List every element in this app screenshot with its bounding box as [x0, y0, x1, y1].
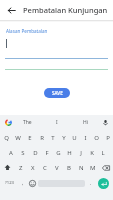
button[interactable]: C — [39, 160, 51, 175]
staticText: R — [40, 134, 44, 142]
button[interactable]: ?123 — [2, 175, 18, 191]
staticText: Alasan Pembatalan — [6, 28, 48, 34]
button[interactable]: . — [86, 175, 95, 191]
button[interactable]: Enter — [98, 178, 109, 189]
button[interactable]: S — [17, 145, 29, 160]
button[interactable]: R — [36, 130, 47, 145]
button[interactable]: Shift — [0, 160, 15, 175]
staticText: SAVE — [52, 90, 63, 96]
button[interactable]: U — [69, 130, 80, 145]
staticText: O — [94, 134, 99, 142]
staticText: C — [43, 164, 47, 172]
button[interactable]: A — [5, 145, 17, 160]
staticText: P — [106, 134, 110, 142]
staticText: M — [90, 164, 96, 172]
button[interactable]: I — [80, 130, 91, 145]
staticText: Q — [4, 134, 9, 142]
staticText: W — [15, 134, 21, 142]
button[interactable]: K — [86, 145, 97, 160]
button[interactable]: Q — [0, 130, 12, 145]
staticText: L — [101, 149, 105, 157]
button[interactable]: Voice input — [100, 117, 110, 127]
button[interactable]: I — [42, 115, 71, 129]
button[interactable]: G — [53, 145, 64, 160]
staticText: D — [33, 149, 38, 157]
staticText: U — [72, 134, 77, 142]
button[interactable]: H — [64, 145, 75, 160]
button[interactable]: , — [18, 175, 27, 191]
button[interactable]: F — [41, 145, 53, 160]
staticText: G — [56, 149, 61, 157]
staticText: Pembatalan Kunjungan — [23, 5, 108, 15]
button[interactable]: M — [87, 160, 99, 175]
staticText: T — [51, 134, 55, 142]
button[interactable]: Z — [15, 160, 27, 175]
button[interactable]: X — [27, 160, 39, 175]
button[interactable]: V — [51, 160, 63, 175]
button[interactable]: Emoji — [27, 175, 37, 191]
staticText: Y — [62, 134, 66, 142]
button[interactable]: D — [29, 145, 41, 160]
button[interactable]: B — [63, 160, 75, 175]
button[interactable]: SAVE — [44, 88, 70, 98]
staticText: X — [31, 164, 35, 172]
button[interactable]: Back — [4, 3, 18, 17]
staticText: N — [79, 164, 84, 172]
staticText: , — [22, 180, 24, 187]
staticText: Hi — [83, 119, 88, 126]
button[interactable]: Y — [58, 130, 69, 145]
staticText: The — [23, 119, 32, 126]
button[interactable]: P — [102, 130, 113, 145]
staticText: V — [55, 164, 59, 172]
button[interactable]: The — [13, 115, 42, 129]
button[interactable]: Google — [3, 117, 13, 127]
staticText: B — [67, 164, 71, 172]
staticText: I — [84, 134, 87, 142]
button[interactable]: W — [12, 130, 24, 145]
staticText: S — [21, 149, 25, 157]
button[interactable]: T — [47, 130, 58, 145]
staticText: E — [28, 134, 32, 142]
staticText: ?123 — [5, 180, 15, 186]
staticText: H — [67, 149, 72, 157]
staticText: . — [90, 180, 92, 187]
button[interactable]: L — [97, 145, 108, 160]
staticText: K — [90, 149, 94, 157]
button[interactable]: N — [75, 160, 87, 175]
staticText: I — [56, 119, 58, 126]
button[interactable]: E — [24, 130, 36, 145]
staticText: J — [80, 149, 82, 157]
button[interactable]: Hi — [71, 115, 100, 129]
button[interactable] — [0, 38, 113, 58]
button[interactable]: O — [91, 130, 102, 145]
staticText: Z — [19, 164, 23, 172]
staticText: F — [45, 149, 49, 157]
staticText: A — [9, 149, 13, 157]
button[interactable]: Backspace — [99, 160, 113, 175]
button[interactable]: J — [75, 145, 86, 160]
